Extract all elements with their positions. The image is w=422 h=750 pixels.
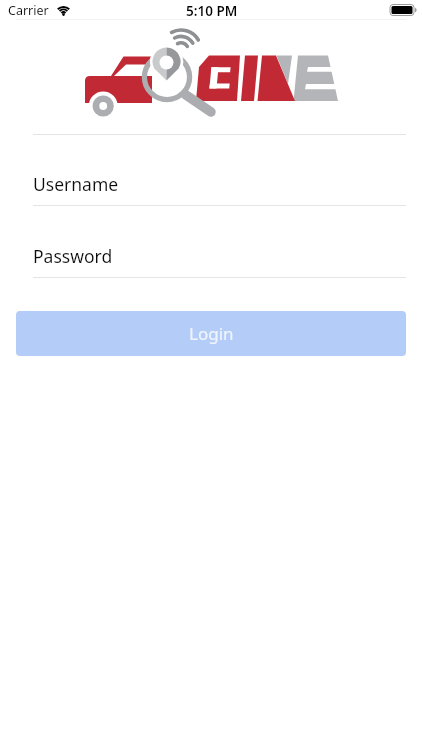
staticText: Login xyxy=(189,322,234,345)
staticText: 5:10 PM xyxy=(186,2,238,20)
button[interactable]: Password xyxy=(16,238,422,274)
staticText: Password xyxy=(33,244,113,268)
button[interactable]: Username xyxy=(16,166,422,202)
button[interactable]: Login xyxy=(16,311,406,356)
staticText: Username xyxy=(33,172,119,196)
staticText: Carrier xyxy=(8,2,49,19)
